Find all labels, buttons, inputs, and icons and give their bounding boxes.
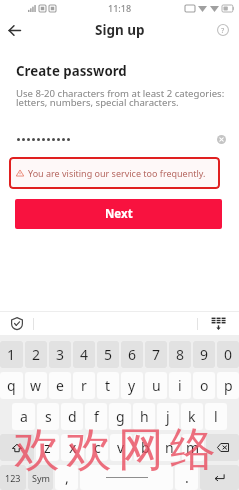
button[interactable]: c <box>86 434 108 461</box>
button[interactable]: k <box>181 403 203 430</box>
button[interactable]: . <box>175 465 198 490</box>
staticText: 2 <box>32 345 41 364</box>
staticText: t <box>105 376 111 395</box>
button[interactable]: 1 <box>0 341 23 368</box>
button[interactable]: h <box>133 403 155 430</box>
staticText: 5 <box>104 345 113 364</box>
button[interactable]: e <box>49 372 71 399</box>
staticText: j <box>166 407 170 426</box>
button[interactable]: Next <box>15 199 222 229</box>
staticText: o <box>200 376 209 395</box>
button[interactable]: Backspace <box>206 434 239 461</box>
button[interactable]: j <box>157 403 179 430</box>
staticText: Sym <box>32 472 50 484</box>
button[interactable]: r <box>73 372 95 399</box>
staticText: l <box>214 407 218 426</box>
staticText: 6 <box>128 345 137 364</box>
button[interactable]: Hide keyboard <box>198 312 239 335</box>
staticText: q <box>7 376 16 395</box>
staticText: n <box>165 438 174 457</box>
staticText: You are visiting our service too frequen… <box>28 167 206 179</box>
button[interactable]: Help <box>211 18 235 42</box>
staticText: d <box>68 407 77 426</box>
staticText: s <box>45 407 52 426</box>
staticText: g <box>116 407 125 426</box>
button[interactable]: z <box>36 434 59 461</box>
button[interactable]: 7 <box>145 341 167 368</box>
button[interactable]: Secure input <box>0 312 33 335</box>
button[interactable]: Back <box>1 17 27 43</box>
button[interactable]: l <box>205 403 227 430</box>
staticText: 9 <box>200 345 209 364</box>
staticText: x <box>69 438 77 457</box>
staticText: ? <box>221 25 225 35</box>
button[interactable]: Shift <box>0 434 34 461</box>
button[interactable]: 3 <box>49 341 71 368</box>
button[interactable]: Clear <box>213 131 229 147</box>
button[interactable]: 6 <box>121 341 143 368</box>
staticText: y <box>128 376 136 395</box>
button[interactable]: v <box>110 434 132 461</box>
staticText: i <box>178 376 182 395</box>
button[interactable]: , <box>55 465 78 490</box>
staticText: v <box>117 438 125 457</box>
button[interactable]: x <box>61 434 84 461</box>
staticText: Create password <box>16 62 127 80</box>
button[interactable]: 2 <box>25 341 47 368</box>
button[interactable]: 0 <box>217 341 239 368</box>
button[interactable]: y <box>121 372 143 399</box>
button[interactable]: Enter <box>200 465 239 490</box>
staticText: e <box>56 376 64 395</box>
button[interactable]: o <box>193 372 215 399</box>
button[interactable]: i <box>169 372 191 399</box>
staticText: 4 <box>80 345 89 364</box>
button[interactable]: f <box>85 403 107 430</box>
button[interactable]: p <box>217 372 239 399</box>
button[interactable]: m <box>182 434 204 461</box>
staticText: Use 8-20 characters from at least 2 cate… <box>16 87 225 109</box>
staticText: . <box>185 468 189 487</box>
button[interactable]: Sym <box>28 465 53 490</box>
staticText: m <box>186 438 200 457</box>
button[interactable]: w <box>25 372 47 399</box>
button[interactable]: n <box>158 434 180 461</box>
button[interactable]: g <box>109 403 131 430</box>
staticText: a <box>20 407 28 426</box>
button[interactable]: d <box>61 403 83 430</box>
button[interactable]: 8 <box>169 341 191 368</box>
staticText: b <box>141 438 150 457</box>
button[interactable]: t <box>97 372 119 399</box>
staticText: f <box>94 407 99 426</box>
button[interactable]: 5 <box>97 341 119 368</box>
staticText: h <box>140 407 149 426</box>
staticText: 0 <box>224 345 233 364</box>
staticText: 1 <box>7 345 16 364</box>
staticText: 7 <box>152 345 161 364</box>
button[interactable]: 4 <box>73 341 95 368</box>
staticText: Sign up <box>95 21 145 39</box>
staticText: Next <box>105 206 133 222</box>
staticText: c <box>94 438 101 457</box>
staticText: u <box>152 376 161 395</box>
staticText: 欢欢网络 <box>11 421 219 479</box>
staticText: , <box>65 468 69 487</box>
button[interactable]: 9 <box>193 341 215 368</box>
staticText: k <box>188 407 196 426</box>
button[interactable]: 123 <box>0 465 26 490</box>
staticText: 11:18 <box>108 2 132 14</box>
button[interactable] <box>80 465 173 490</box>
button[interactable]: s <box>37 403 59 430</box>
staticText: p <box>224 376 233 395</box>
staticText: 8 <box>176 345 185 364</box>
staticText: z <box>44 438 51 457</box>
button[interactable]: q <box>0 372 23 399</box>
staticText: w <box>30 376 42 395</box>
button[interactable]: u <box>145 372 167 399</box>
staticText: 3 <box>56 345 65 364</box>
button[interactable]: b <box>134 434 156 461</box>
staticText: 123 <box>5 472 21 484</box>
button[interactable]: a <box>12 403 35 430</box>
staticText: r <box>81 376 87 395</box>
